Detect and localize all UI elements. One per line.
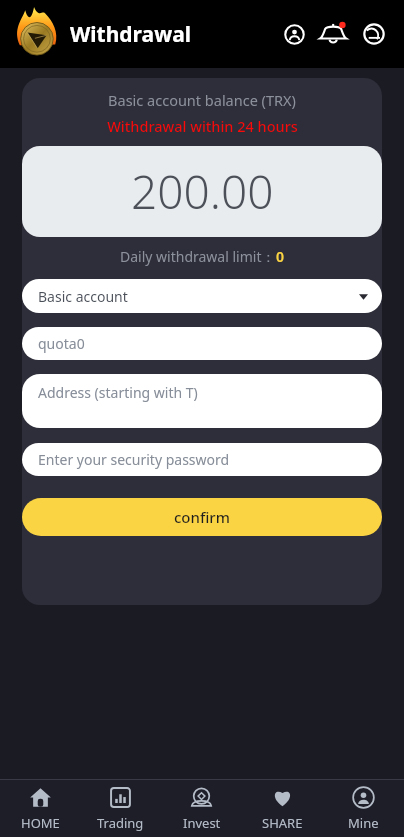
button[interactable]: confirm [22, 498, 382, 536]
button[interactable]: HOME [0, 780, 80, 837]
button[interactable]: quota0 [22, 327, 382, 360]
staticText: Withdrawal [70, 20, 191, 49]
staticText: Invest [183, 814, 221, 832]
button[interactable]: Basic account [22, 279, 382, 313]
button[interactable]: Enter your security password [22, 443, 382, 476]
staticText: Withdrawal within 24 hours [107, 116, 298, 136]
button[interactable]: Language [358, 18, 390, 50]
staticText: 200.00 [131, 160, 274, 223]
button[interactable]: Customer service [278, 18, 310, 50]
staticText: Daily withdrawal limit： [120, 247, 276, 266]
staticText: Enter your security password [38, 450, 230, 469]
staticText: SHARE [262, 814, 303, 832]
staticText: Mine [348, 814, 379, 832]
button[interactable]: Invest [161, 780, 242, 837]
staticText: Trading [97, 814, 144, 832]
button[interactable]: Address (starting with T) [22, 374, 382, 428]
staticText: Address (starting with T) [38, 383, 198, 402]
button[interactable]: SHARE [242, 780, 323, 837]
staticText: HOME [21, 814, 60, 832]
button[interactable]: Notifications [318, 18, 350, 50]
staticText: Basic account [38, 287, 128, 306]
staticText: 0 [276, 247, 285, 266]
button[interactable]: Trading [80, 780, 161, 837]
staticText: Basic account balance (TRX) [108, 90, 296, 110]
button[interactable]: Mine [323, 780, 404, 837]
staticText: confirm [174, 507, 230, 527]
staticText: quota0 [38, 334, 85, 353]
